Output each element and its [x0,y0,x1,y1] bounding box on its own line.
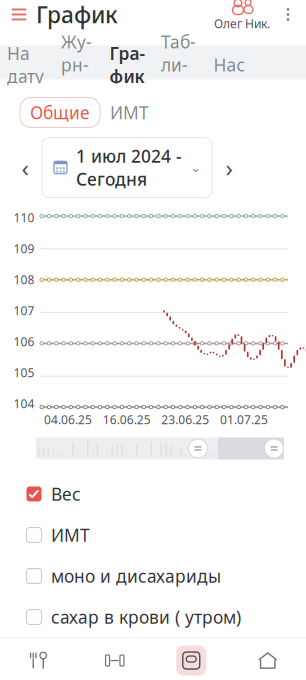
staticText: Олег Ник. [214,15,270,31]
staticText: 105 [13,365,34,380]
button[interactable]: График [102,45,153,79]
button[interactable]: Следующий период [218,153,240,181]
button[interactable]: Главная [229,639,306,680]
staticText: 104 [13,396,34,411]
button[interactable]: На дату [0,45,51,79]
button[interactable]: Меню [0,0,118,35]
staticText: На дату [7,42,44,88]
button[interactable]: Нас [204,45,255,79]
button[interactable]: Предыдущий период [14,153,36,181]
staticText: 109 [13,241,34,256]
staticText: моно и дисахариды [51,564,221,587]
button[interactable]: Журнал [51,45,102,79]
staticText: 01.07.25 [220,411,268,427]
button[interactable]: Начало диапазона [188,437,208,459]
staticText: ‹ [21,152,28,183]
button[interactable]: Олег Ник. [210,0,274,31]
button[interactable]: Вес [153,639,229,680]
staticText: График [36,0,118,29]
button[interactable]: сахар в крови ( утром) [4,596,302,637]
button[interactable]: ИМТ [108,97,151,127]
button[interactable]: Питание [0,639,76,680]
staticText: 108 [13,272,34,287]
staticText: 106 [13,334,34,349]
staticText: Журнал [61,30,92,99]
staticText: Общие [30,101,90,124]
button[interactable]: 1 июл 2024 - Сегодня [42,137,212,197]
button[interactable]: Ещё [274,4,302,24]
button[interactable]: моно и дисахариды [4,555,302,596]
staticText: 16.06.25 [103,411,151,427]
staticText: ИМТ [51,523,90,546]
staticText: сахар в крови ( утром) [51,605,241,628]
staticText: › [225,152,232,183]
staticText: ИМТ [110,101,149,124]
staticText: 110 [13,210,34,225]
staticText: 04.06.25 [44,411,92,427]
staticText: 1 июл 2024 - Сегодня [76,144,182,190]
button[interactable]: Таблица [153,45,204,79]
staticText: 23.06.25 [161,411,209,427]
staticText: График [109,42,145,88]
staticText: Вес [51,482,81,505]
button[interactable]: Общие [20,97,100,127]
button[interactable]: Вес [4,473,302,514]
staticText: ⌄ [190,160,201,175]
staticText: 107 [13,303,34,318]
staticText: Таблица [161,30,196,99]
button[interactable]: Тренировки [76,639,153,680]
staticText: Нас [213,53,245,76]
button[interactable]: ИМТ [4,514,302,555]
button[interactable]: Конец диапазона [264,437,284,459]
